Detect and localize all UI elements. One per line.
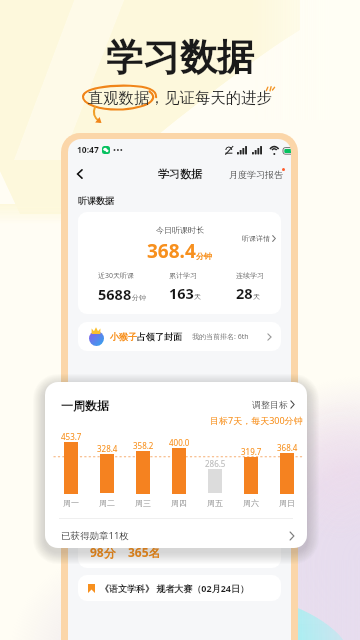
staticText: 周一 xyxy=(63,498,79,508)
staticText: 周四 xyxy=(171,498,187,508)
staticText: 累计学习 xyxy=(169,271,197,280)
staticText: 周二 xyxy=(99,498,115,508)
staticText: 10:47 xyxy=(77,144,99,156)
staticText: 358.2 xyxy=(133,440,154,451)
staticText: 163 xyxy=(169,283,194,303)
staticText: 连续学习 xyxy=(236,271,264,280)
staticText: 周五 xyxy=(207,498,223,508)
staticText: 目标7天，每天300分钟 xyxy=(210,414,303,426)
button[interactable]: 调整目标 xyxy=(252,399,295,410)
staticText: 319.7 xyxy=(241,446,262,457)
staticText: 我的当前排名: 6th xyxy=(192,332,249,342)
staticText: 学习数据 xyxy=(158,167,202,181)
staticText: 今日听课时长 xyxy=(156,225,204,235)
staticText: 听课数据 xyxy=(78,195,114,206)
staticText: 400.0 xyxy=(169,437,190,448)
staticText: 5688 xyxy=(98,284,132,304)
staticText: 《数学查漏补缺》 课 今天(00)/00节 xyxy=(90,529,209,539)
button[interactable]: 返回 xyxy=(68,162,92,186)
staticText: 328.4 xyxy=(97,443,118,454)
button[interactable]: 小猴子 xyxy=(78,322,281,351)
staticText: 一周数据 xyxy=(61,398,109,413)
staticText: 453.7 xyxy=(61,431,82,442)
button[interactable]: 已获得勋章11枚 xyxy=(45,523,307,548)
staticText: 直观数据，见证每天的进步 xyxy=(88,88,272,107)
staticText: 周六 xyxy=(243,498,259,508)
staticText: 周三 xyxy=(135,498,151,508)
staticText: 天 xyxy=(253,292,260,301)
staticText: 286.5 xyxy=(205,458,226,469)
staticText: 周日 xyxy=(279,498,295,508)
staticText: 调整目标 xyxy=(252,399,288,410)
staticText: 《语文学科》 规者大赛（02月24日） xyxy=(100,582,249,594)
staticText: 小猴子 xyxy=(110,331,137,342)
staticText: 天 xyxy=(194,292,201,301)
staticText: 听课详情 xyxy=(242,234,270,243)
staticText: 分钟 xyxy=(196,251,212,261)
staticText: 月度学习报告 xyxy=(229,169,283,180)
staticText: 365名 xyxy=(128,544,161,560)
staticText: 28 xyxy=(236,283,253,303)
staticText: 分钟 xyxy=(132,293,146,302)
staticText: 近30天听课 xyxy=(98,271,135,281)
staticText: 368.4 xyxy=(277,442,298,453)
staticText: 368.4 xyxy=(147,238,196,264)
button[interactable]: 听课详情 xyxy=(242,234,276,243)
staticText: 已获得勋章11枚 xyxy=(61,529,129,542)
staticText: 学习数据 xyxy=(106,34,254,81)
staticText: 98分 xyxy=(90,544,116,560)
staticText: 占领了封面 xyxy=(137,331,182,342)
button[interactable]: 月度学习报告 xyxy=(229,169,291,180)
